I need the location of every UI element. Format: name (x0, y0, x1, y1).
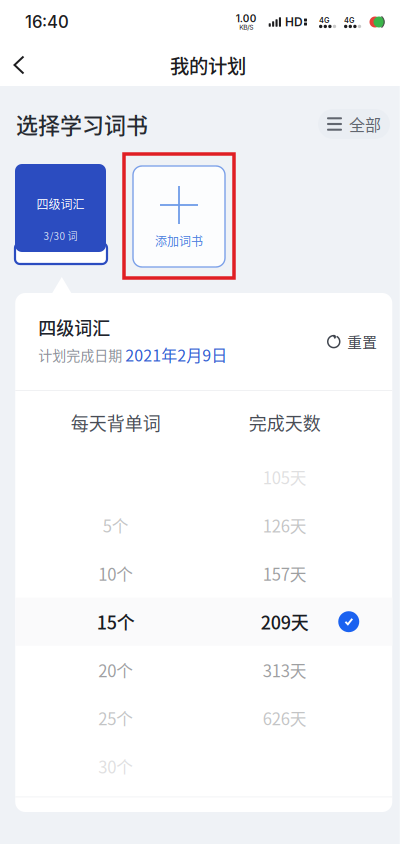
staticText: 626天 (263, 706, 307, 730)
staticText: 126天 (263, 513, 307, 537)
staticText: 5个 (103, 513, 129, 537)
staticText: 选择学习词书 (16, 108, 148, 140)
button[interactable]: 20个 (15, 646, 392, 694)
button[interactable]: 5个 (15, 501, 392, 549)
staticText: 16:40 (25, 12, 69, 32)
button[interactable]: 四级词汇 (15, 164, 107, 264)
button[interactable]: 添加词书 (124, 154, 234, 278)
staticText: HD (285, 15, 303, 29)
staticText: 10个 (98, 561, 133, 585)
staticText: 1.00 (236, 13, 257, 25)
staticText: 157天 (263, 561, 307, 585)
staticText: 全部 (349, 112, 381, 136)
staticText: 4G (319, 16, 329, 25)
staticText: 25个 (98, 706, 133, 730)
button[interactable]: 全部 (318, 109, 390, 139)
staticText: 313天 (263, 658, 307, 682)
button[interactable]: 15个 (15, 598, 392, 646)
staticText: 4G (344, 16, 354, 25)
staticText: KB/S (239, 23, 253, 31)
staticText: 20个 (98, 658, 133, 682)
staticText: 完成天数 (249, 409, 321, 436)
staticText: 105天 (263, 465, 307, 489)
staticText: 我的计划 (170, 51, 246, 79)
button[interactable]: Back (0, 44, 38, 86)
staticText: 209天 (261, 609, 309, 635)
staticText: 四级词汇 (38, 314, 110, 340)
staticText: 四级词汇 (36, 195, 84, 212)
button[interactable]: 25个 (15, 694, 392, 742)
staticText: 重置 (347, 331, 377, 352)
button[interactable]: 重置 (326, 328, 377, 356)
staticText: 15个 (97, 609, 135, 635)
staticText: 计划完成日期 (38, 344, 122, 365)
button[interactable]: 10个 (15, 549, 392, 598)
staticText: 30个 (98, 754, 133, 778)
staticText: 每天背单词 (71, 409, 161, 436)
staticText: 3/30 词 (43, 228, 77, 243)
staticText: 2021年2月9日 (125, 343, 227, 366)
staticText: 添加词书 (155, 232, 203, 249)
